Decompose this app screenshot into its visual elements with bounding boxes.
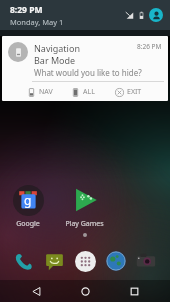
button[interactable]: Home [72,280,98,302]
staticText: Navigation Bar Mode [34,42,85,66]
button[interactable]: ALL [70,82,114,101]
button[interactable]: User profile [149,8,163,22]
other: Wi-Fi [125,11,134,20]
other: Battery [137,11,146,20]
button[interactable]: g [0,183,56,229]
staticText: 8:29 PM [10,4,43,16]
button[interactable]: Play Games [56,183,113,229]
staticText: Google [16,219,40,229]
staticText: Play Games [65,219,104,229]
staticText: 8:26 PM [137,42,162,51]
button[interactable]: Phone [11,248,37,274]
button[interactable]: Browser [103,248,129,274]
staticText: Monday, May 1 [10,17,64,27]
staticText: g [24,192,32,208]
staticText: What would you like to hide? [34,67,142,78]
button[interactable]: Apps [72,248,98,274]
button[interactable]: NAV [26,82,70,101]
staticText: NAV [39,87,53,97]
button[interactable]: Navigation Bar Mode [2,36,168,101]
button[interactable]: EXIT [114,82,158,101]
button[interactable]: Recent apps [121,280,147,302]
button[interactable]: Messaging [41,248,67,274]
staticText: EXIT [127,87,142,97]
button[interactable]: Back [23,280,49,302]
button[interactable]: Camera [133,248,159,274]
staticText: ALL [83,87,95,97]
